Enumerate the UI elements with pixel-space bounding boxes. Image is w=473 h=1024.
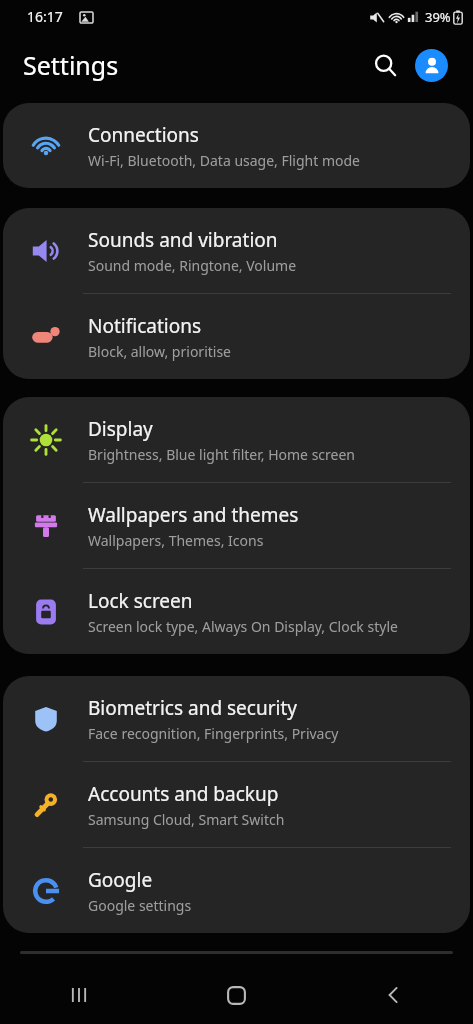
staticText: Google settings (88, 896, 192, 915)
staticText: Wi-Fi, Bluetooth, Data usage, Flight mod… (88, 151, 361, 170)
button[interactable]: Lock screen (3, 569, 470, 654)
button[interactable]: Connections (3, 103, 470, 188)
button[interactable]: Search (363, 43, 407, 87)
button[interactable]: Profile (415, 49, 448, 82)
staticText: Lock screen (88, 588, 193, 614)
button[interactable]: Recents (0, 966, 157, 1024)
staticText: 39% (425, 8, 451, 26)
button[interactable]: Wallpapers and themes (3, 483, 470, 568)
button[interactable]: Google (3, 848, 470, 933)
button[interactable]: Accounts and backup (3, 762, 470, 847)
staticText: Connections (88, 122, 199, 148)
staticText: Google (88, 867, 153, 893)
button[interactable]: Sounds and vibration (3, 208, 470, 293)
staticText: Wallpapers, Themes, Icons (88, 531, 264, 550)
staticText: Screen lock type, Always On Display, Clo… (88, 617, 398, 636)
staticText: Block, allow, prioritise (88, 342, 232, 361)
staticText: 16:17 (27, 7, 63, 26)
button[interactable]: Notifications (3, 294, 470, 379)
button[interactable]: Display (3, 397, 470, 482)
button[interactable]: Biometrics and security (3, 676, 470, 761)
staticText: Sound mode, Ringtone, Volume (88, 256, 297, 275)
staticText: Sounds and vibration (88, 227, 278, 253)
button[interactable]: Back (315, 966, 473, 1024)
button[interactable]: Home (157, 966, 315, 1024)
staticText: Face recognition, Fingerprints, Privacy (88, 724, 339, 743)
staticText: Accounts and backup (88, 781, 279, 807)
staticText: Samsung Cloud, Smart Switch (88, 810, 285, 829)
staticText: Biometrics and security (88, 695, 298, 721)
staticText: Display (88, 416, 153, 442)
staticText: Wallpapers and themes (88, 502, 299, 528)
staticText: Brightness, Blue light filter, Home scre… (88, 445, 356, 464)
staticText: Notifications (88, 313, 202, 339)
staticText: Settings (23, 48, 119, 82)
